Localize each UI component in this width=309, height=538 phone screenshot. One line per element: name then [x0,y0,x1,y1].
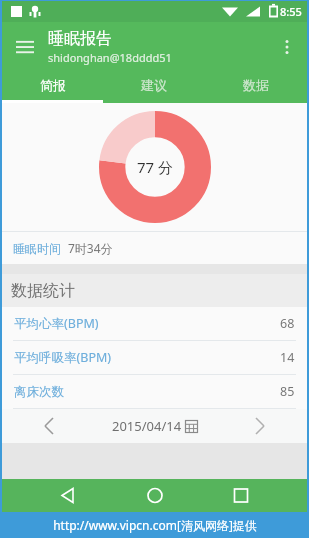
button[interactable]: Next day [247,413,273,439]
button[interactable]: 简报 [2,71,103,103]
staticText: 数据 [243,77,269,93]
button[interactable]: 数据 [205,71,307,103]
staticText: shidonghan@18dddd51 [48,50,172,65]
staticText: 数据统计 [11,281,75,301]
button[interactable]: 平均心率(BPM) [2,307,307,341]
button[interactable]: Menu [8,30,42,64]
staticText: 简报 [40,77,66,93]
button[interactable]: 离床次数 [2,375,307,409]
button[interactable]: Home [134,479,176,512]
staticText: 睡眠报告 [48,29,112,49]
staticText: 77 分 [137,157,174,177]
staticText: 14 [280,349,295,366]
button[interactable]: 翻身 [2,409,307,443]
staticText: 7时34分 [68,240,113,256]
button[interactable]: 平均呼吸率(BPM) [2,341,307,375]
button[interactable]: Recent apps [220,479,262,512]
staticText: 平均呼吸率(BPM) [14,349,112,366]
staticText: 平均心率(BPM) [14,315,99,332]
button[interactable]: 2015/04/14 [112,417,198,435]
staticText: 睡眠时间 [13,241,61,256]
staticText: 2015/04/14 [112,417,182,435]
staticText: 85 [280,383,295,400]
button[interactable]: Back [47,479,89,512]
staticText: 68 [280,315,295,332]
staticText: 8:55 [280,4,302,19]
button[interactable]: 建议 [103,71,205,103]
staticText: http://www.vipcn.com[清风网络]提供 [53,517,257,533]
staticText: 离床次数 [14,384,64,400]
button[interactable]: More options [271,31,303,63]
staticText: 建议 [141,77,167,93]
button[interactable]: Previous day [36,413,62,439]
button[interactable]: 睡眠时间 [2,232,307,264]
